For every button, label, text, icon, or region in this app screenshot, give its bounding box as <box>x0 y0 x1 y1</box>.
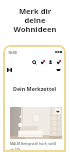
button[interactable]: Startseite <box>7 68 12 72</box>
staticText: 16:00 <box>8 50 17 55</box>
button[interactable]: Merkzettel <box>56 60 61 65</box>
button[interactable] <box>10 107 62 139</box>
button[interactable]: Merkzettel <box>40 60 45 65</box>
button[interactable]: Einkaufswagen <box>56 67 61 72</box>
button[interactable]: Konto <box>48 60 53 65</box>
staticText: Dein Merkzettel <box>3 85 66 92</box>
staticText: Merk dir deine Wohnideen <box>0 6 70 34</box>
staticText: MALM Bettgestell hoch, weiß <box>10 141 57 146</box>
staticText: ab 199,- <box>10 148 22 152</box>
button[interactable]: Suche <box>32 60 37 65</box>
